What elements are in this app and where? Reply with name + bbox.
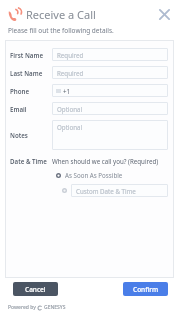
staticText: Custom Date & Time [76,187,136,195]
staticText: Phone [10,87,30,95]
staticText: Required [57,69,84,77]
staticText: Date & Time [10,157,47,165]
staticText: Powered by [8,304,36,311]
button[interactable]: Close [154,4,174,24]
button[interactable]: Confirm [123,282,168,296]
button[interactable]: Required [52,66,168,79]
staticText: As Soon As Possible [65,171,123,179]
staticText: Last Name [10,69,43,77]
button[interactable]: Optional [52,120,168,150]
staticText: GENESYS [44,304,66,311]
staticText: Notes [10,131,28,139]
staticText: Please fill out the following details. [8,26,114,35]
button[interactable]: As Soon As Possible [56,171,123,179]
staticText: Required [57,51,84,59]
staticText: Confirm [133,285,159,294]
staticText: Optional [57,105,83,113]
button[interactable]: Optional [52,102,168,115]
staticText: Optional [57,123,83,131]
button[interactable]: Cancel [13,282,58,296]
button[interactable]: +1 [52,84,168,97]
button[interactable]: Custom Date & Time [62,184,168,197]
staticText: Email [10,105,27,113]
staticText: Cancel [25,285,46,294]
button[interactable]: Required [52,48,168,61]
staticText: First Name [10,51,44,59]
staticText: When should we call you? (Required) [52,157,159,165]
staticText: Receive a Call [26,7,96,22]
staticText: +1 [63,87,71,95]
